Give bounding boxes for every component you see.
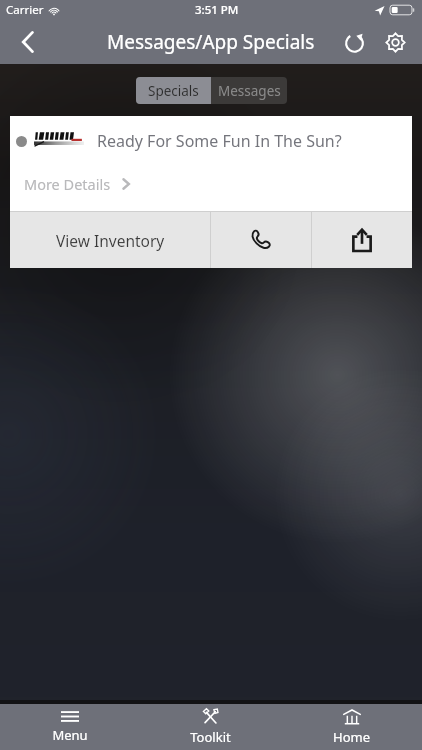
staticText: Ready For Some Fun In The Sun? <box>97 130 342 152</box>
staticText: 3:51 PM <box>195 2 239 18</box>
button[interactable]: Toolkit <box>140 704 281 750</box>
staticText: Specials <box>148 82 199 100</box>
staticText: View Inventory <box>56 230 165 251</box>
button[interactable]: Share <box>312 212 412 268</box>
staticText: Toolkit <box>190 728 231 746</box>
button[interactable]: Back <box>8 22 48 62</box>
button[interactable]: Specials <box>136 77 211 104</box>
staticText: Home <box>333 728 370 746</box>
button[interactable]: Refresh <box>334 22 374 62</box>
button[interactable]: Messages <box>211 77 287 104</box>
staticText: Messages/App Specials <box>107 29 315 55</box>
button[interactable]: View Inventory <box>10 212 210 268</box>
button[interactable]: Settings <box>374 21 416 63</box>
button[interactable]: More Details <box>24 174 412 194</box>
button[interactable]: Menu <box>0 704 140 750</box>
button[interactable]: Call <box>211 212 311 268</box>
staticText: Carrier <box>6 2 44 18</box>
staticText: Menu <box>52 726 88 744</box>
button[interactable]: Home <box>281 704 422 750</box>
staticText: More Details <box>24 174 111 194</box>
staticText: Messages <box>218 82 281 100</box>
